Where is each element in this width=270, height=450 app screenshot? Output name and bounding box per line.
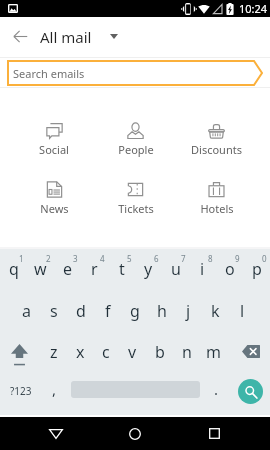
staticText: n: [182, 341, 192, 363]
button[interactable]: Search emails: [7, 60, 263, 86]
button[interactable]: 6: [135, 253, 162, 292]
staticText: News: [40, 201, 69, 216]
button[interactable]: c: [93, 331, 119, 370]
button[interactable]: ?123: [0, 370, 41, 409]
staticText: e: [63, 258, 73, 280]
button[interactable]: v: [119, 331, 146, 370]
staticText: f: [105, 300, 111, 322]
staticText: k: [211, 300, 220, 322]
staticText: o: [225, 258, 235, 280]
staticText: 0: [262, 253, 267, 264]
button[interactable]: 8: [189, 253, 216, 292]
staticText: v: [128, 341, 137, 363]
staticText: x: [76, 341, 85, 363]
button[interactable]: Tickets: [95, 181, 176, 216]
staticText: Search emails: [13, 66, 85, 81]
button[interactable]: Social: [13, 122, 95, 157]
button[interactable]: g: [121, 292, 148, 331]
staticText: All mail: [40, 27, 92, 47]
staticText: p: [252, 258, 262, 280]
staticText: 4: [100, 253, 105, 264]
button[interactable]: 1: [0, 253, 27, 292]
staticText: u: [171, 258, 181, 280]
button[interactable]: s: [40, 292, 67, 331]
staticText: s: [50, 300, 58, 322]
staticText: People: [118, 142, 154, 157]
staticText: d: [76, 300, 86, 322]
button[interactable]: x: [67, 331, 93, 370]
button[interactable]: 4: [81, 253, 108, 292]
staticText: r: [91, 258, 98, 280]
staticText: 7: [181, 253, 186, 264]
staticText: y: [144, 258, 153, 280]
staticText: 1: [19, 253, 24, 264]
staticText: ?123: [10, 384, 32, 398]
button[interactable]: Discounts: [176, 122, 257, 157]
staticText: g: [130, 300, 140, 322]
button[interactable]: d: [67, 292, 94, 331]
staticText: z: [50, 341, 58, 363]
staticText: 3: [73, 253, 78, 264]
staticText: 2: [46, 253, 51, 264]
button[interactable]: 7: [162, 253, 189, 292]
button[interactable]: Back: [11, 417, 101, 450]
button[interactable]: m: [200, 331, 227, 370]
button[interactable]: f: [94, 292, 121, 331]
button[interactable]: n: [173, 331, 200, 370]
button[interactable]: Home: [90, 417, 180, 450]
staticText: Hotels: [200, 201, 234, 216]
staticText: Discounts: [191, 142, 242, 157]
staticText: j: [186, 300, 191, 322]
button[interactable]: Back: [0, 17, 40, 55]
staticText: 5: [127, 253, 132, 264]
button[interactable]: 3: [54, 253, 81, 292]
button[interactable]: l: [229, 292, 256, 331]
staticText: i: [200, 258, 205, 280]
button[interactable]: b: [146, 331, 173, 370]
staticText: 10:24: [239, 1, 268, 16]
button[interactable]: Change folder: [101, 17, 127, 55]
staticText: Tickets: [118, 201, 154, 216]
staticText: c: [102, 341, 110, 363]
staticText: 6: [154, 253, 159, 264]
staticText: Social: [39, 142, 69, 157]
staticText: q: [9, 258, 19, 280]
button[interactable]: 9: [216, 253, 243, 292]
button[interactable]: 0: [243, 253, 270, 292]
button[interactable]: Hotels: [176, 181, 257, 216]
button[interactable]: Backspace: [227, 331, 270, 370]
button[interactable]: 5: [108, 253, 135, 292]
staticText: w: [34, 258, 47, 280]
staticText: .: [214, 379, 219, 399]
staticText: a: [22, 300, 31, 322]
button[interactable]: j: [175, 292, 202, 331]
button[interactable]: 2: [27, 253, 54, 292]
button[interactable]: .: [201, 370, 231, 409]
staticText: t: [119, 258, 125, 280]
button[interactable]: Shift: [0, 331, 41, 370]
button[interactable]: a: [13, 292, 40, 331]
button[interactable]: Recents: [169, 417, 259, 450]
staticText: 8: [208, 253, 213, 264]
button[interactable]: k: [202, 292, 229, 331]
button[interactable]: People: [95, 122, 176, 157]
button[interactable]: News: [13, 181, 95, 216]
staticText: 9: [235, 253, 240, 264]
button[interactable]: z: [41, 331, 67, 370]
button[interactable]: Search: [238, 379, 263, 404]
staticText: b: [155, 341, 165, 363]
staticText: m: [206, 341, 221, 363]
button[interactable]: h: [148, 292, 175, 331]
staticText: h: [157, 300, 167, 322]
staticText: l: [240, 300, 245, 322]
staticText: ,: [52, 379, 57, 399]
button[interactable]: ,: [39, 370, 69, 409]
